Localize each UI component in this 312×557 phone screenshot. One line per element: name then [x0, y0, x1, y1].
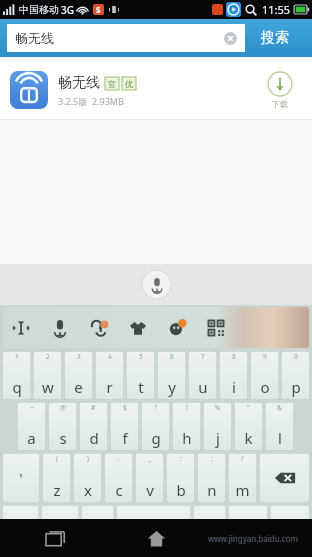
button[interactable]: 符	[2, 505, 39, 555]
staticText: a	[27, 428, 36, 448]
staticText: c	[115, 480, 123, 500]
staticText: l	[278, 428, 282, 448]
staticText: 优	[125, 79, 133, 89]
staticText: r	[106, 377, 113, 397]
button[interactable]: ,	[81, 505, 114, 555]
staticText: www.jingyan.baidu.com	[208, 533, 298, 544]
staticText: w	[42, 377, 54, 397]
staticText: ~	[30, 403, 34, 412]
staticText: b	[176, 480, 186, 500]
button[interactable]: '	[2, 453, 40, 503]
staticText: )	[87, 454, 89, 463]
staticText: n	[207, 480, 217, 500]
staticText: 5	[139, 352, 143, 361]
button[interactable]: 5	[126, 351, 155, 400]
staticText: ?	[154, 403, 157, 412]
button[interactable]: 1	[2, 351, 31, 400]
staticText: 畅无线	[15, 30, 54, 46]
button[interactable]: Attach	[84, 313, 114, 343]
staticText: 7	[201, 352, 205, 361]
staticText: 0	[294, 352, 298, 361]
staticText: _	[148, 454, 151, 463]
staticText: 。	[202, 521, 217, 540]
button[interactable]: 7	[188, 351, 217, 400]
button[interactable]: #	[79, 402, 108, 451]
staticText: m	[235, 480, 250, 500]
button[interactable]: ~	[17, 402, 46, 451]
button[interactable]: Backspace	[259, 453, 310, 503]
button[interactable]: :	[166, 453, 195, 503]
staticText: g	[151, 428, 161, 448]
staticText: !	[186, 403, 188, 412]
button[interactable]: 畅无线	[0, 61, 312, 119]
staticText: :	[180, 454, 182, 463]
staticText: #	[91, 403, 96, 412]
button[interactable]: 。	[193, 505, 226, 555]
staticText: ;	[211, 454, 213, 463]
button[interactable]: ?	[141, 402, 170, 451]
button[interactable]: Move cursor	[6, 313, 36, 343]
button[interactable]: 9	[250, 351, 279, 400]
button[interactable]: Recents	[38, 521, 72, 555]
button[interactable]: Voice	[45, 313, 75, 343]
staticText: s	[59, 428, 67, 448]
button[interactable]: /	[228, 453, 257, 503]
button[interactable]: 3	[64, 351, 93, 400]
button[interactable]: Expression	[162, 313, 192, 343]
staticText: 6	[170, 352, 174, 361]
button[interactable]: 2	[33, 351, 62, 400]
button[interactable]: 4	[95, 351, 124, 400]
button[interactable]: $	[110, 402, 139, 451]
staticText: 3G	[61, 3, 74, 17]
button[interactable]: Clear	[224, 32, 237, 45]
staticText: j	[216, 428, 220, 448]
button[interactable]: Skin	[123, 313, 153, 343]
button[interactable]: -	[104, 453, 133, 503]
staticText: o	[260, 377, 270, 397]
staticText: 搜索	[261, 29, 289, 47]
button[interactable]: Scan	[201, 313, 231, 343]
staticText: 8	[232, 352, 236, 361]
staticText: /	[241, 454, 244, 463]
button[interactable]: 6	[157, 351, 186, 400]
staticText: '	[19, 468, 23, 488]
button[interactable]: 搜索	[245, 24, 305, 52]
button[interactable]: 8	[219, 351, 248, 400]
staticText: 123	[51, 523, 70, 538]
staticText: u	[198, 377, 208, 397]
staticText: v	[146, 480, 154, 500]
staticText: i	[232, 377, 236, 397]
staticText: 3	[77, 352, 81, 361]
button[interactable]: _	[135, 453, 164, 503]
button[interactable]: 搜索	[270, 505, 310, 555]
staticText: S	[96, 4, 101, 15]
staticText: %	[215, 403, 221, 412]
button[interactable]: (	[42, 453, 71, 503]
button[interactable]: 下载	[258, 71, 302, 109]
button[interactable]: 0	[281, 351, 310, 400]
button[interactable]: 123	[41, 505, 79, 555]
button[interactable]: %	[203, 402, 232, 451]
staticText: 11:55	[262, 2, 291, 17]
staticText: 下载	[272, 99, 288, 109]
staticText: "	[247, 403, 250, 412]
button[interactable]: Home	[139, 521, 173, 555]
button[interactable]: 畅无线	[7, 24, 245, 52]
button[interactable]	[116, 505, 191, 555]
button[interactable]: 中/英	[228, 505, 268, 555]
button[interactable]: @	[48, 402, 77, 451]
button[interactable]: &	[265, 402, 294, 451]
button[interactable]: !	[172, 402, 201, 451]
button[interactable]: )	[73, 453, 102, 503]
button[interactable]: "	[234, 402, 263, 451]
button[interactable]: ;	[197, 453, 226, 503]
button[interactable]: Voice input	[141, 269, 172, 300]
staticText: p	[291, 377, 301, 397]
staticText: h	[182, 428, 192, 448]
staticText: (	[56, 454, 58, 463]
staticText: q	[12, 377, 22, 397]
staticText: 畅无线	[58, 74, 100, 92]
staticText: 中国移动	[19, 3, 59, 16]
